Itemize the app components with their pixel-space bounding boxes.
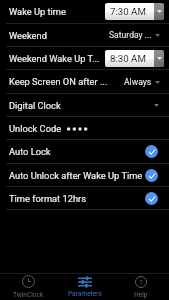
- button[interactable]: Wake Up time: [0, 0, 169, 24]
- staticText: Time format 12hrs: [9, 193, 86, 204]
- staticText: Auto Lock: [9, 146, 51, 157]
- staticText: Saturday ...: [109, 30, 152, 40]
- button[interactable]: Auto Lock enabled: [145, 145, 158, 158]
- button[interactable]: Unlock Code: [0, 117, 169, 140]
- button[interactable]: 8:30 AM: [105, 50, 164, 67]
- staticText: 8:30 AM: [110, 53, 146, 64]
- staticText: TwinClock: [13, 291, 44, 299]
- button[interactable]: Weekend: [0, 24, 169, 47]
- staticText: Digital Clock: [9, 100, 61, 111]
- staticText: 7:30 AM: [110, 6, 146, 17]
- staticText: ?: [139, 278, 143, 287]
- button[interactable]: TwinClock: [0, 274, 57, 300]
- staticText: Always: [124, 77, 152, 87]
- button[interactable]: Weekend Wake Up T...: [0, 47, 169, 70]
- staticText: Keep Screen ON after ...: [9, 76, 108, 87]
- staticText: Wake Up time: [9, 6, 66, 17]
- staticText: Help: [134, 291, 148, 299]
- button[interactable]: Parameters: [57, 274, 113, 300]
- staticText: Unlock Code: [9, 123, 62, 134]
- button[interactable]: Auto Unlock after Wake Up Time: [0, 164, 169, 187]
- button[interactable]: ?: [113, 274, 169, 300]
- staticText: Weekend: [9, 30, 47, 41]
- staticText: Weekend Wake Up T...: [9, 53, 100, 64]
- staticText: Auto Unlock after Wake Up Time: [9, 170, 143, 181]
- button[interactable]: Auto Lock: [0, 140, 169, 164]
- button[interactable]: Auto Unlock enabled: [145, 169, 158, 182]
- button[interactable]: Digital Clock: [0, 94, 169, 117]
- button[interactable]: 7:30 AM: [105, 3, 164, 20]
- button[interactable]: Time format 12hrs enabled: [145, 192, 158, 205]
- staticText: Parameters: [68, 290, 102, 298]
- button[interactable]: Time format 12hrs: [0, 187, 169, 210]
- button[interactable]: Keep Screen ON after ...: [0, 70, 169, 94]
